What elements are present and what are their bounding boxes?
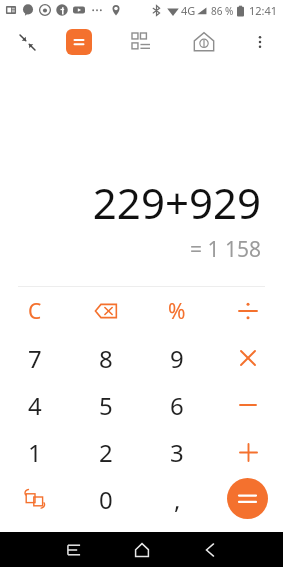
staticText: 4G: [181, 3, 196, 18]
button[interactable]: 8: [84, 336, 128, 380]
button[interactable]: Back: [188, 532, 232, 567]
staticText: 2: [99, 436, 113, 469]
button[interactable]: Calculator: [66, 29, 92, 55]
button[interactable]: 9: [155, 336, 199, 380]
staticText: %: [168, 297, 186, 326]
button[interactable]: Divide: [228, 291, 268, 331]
staticText: 0: [99, 483, 113, 516]
staticText: 4: [28, 389, 42, 422]
staticText: 86 %: [211, 4, 234, 18]
button[interactable]: C: [13, 289, 57, 333]
button[interactable]: %: [155, 289, 199, 333]
staticText: 229+929: [92, 174, 261, 231]
button[interactable]: 0: [84, 477, 128, 521]
staticText: ,: [174, 483, 181, 516]
staticText: 7: [28, 342, 42, 375]
button[interactable]: ,: [155, 477, 199, 521]
button[interactable]: Recent apps: [52, 532, 96, 567]
staticText: = 1 158: [190, 235, 261, 264]
button[interactable]: Plus: [228, 432, 268, 472]
staticText: 3: [170, 436, 184, 469]
button[interactable]: 7: [13, 336, 57, 380]
staticText: 9: [170, 342, 184, 375]
button[interactable]: 5: [84, 383, 128, 427]
button[interactable]: 2: [84, 430, 128, 474]
staticText: 8: [99, 342, 113, 375]
staticText: 12:41: [249, 3, 278, 18]
button[interactable]: Equals: [227, 478, 268, 519]
button[interactable]: Minus: [228, 385, 268, 425]
button[interactable]: More options: [245, 27, 275, 57]
button[interactable]: 3: [155, 430, 199, 474]
staticText: C: [28, 297, 42, 326]
staticText: 6: [170, 389, 184, 422]
button[interactable]: Backspace: [86, 291, 126, 331]
button[interactable]: Multiply: [228, 338, 268, 378]
button[interactable]: 1: [13, 430, 57, 474]
button[interactable]: Mortgage calculator: [188, 26, 220, 58]
button[interactable]: Unit converter: [126, 27, 156, 57]
button[interactable]: 6: [155, 383, 199, 427]
staticText: 5: [99, 389, 113, 422]
button[interactable]: 4: [13, 383, 57, 427]
staticText: 1: [28, 436, 42, 469]
button[interactable]: Convert: [15, 479, 55, 519]
button[interactable]: Collapse: [12, 27, 42, 57]
button[interactable]: Home: [120, 532, 164, 567]
